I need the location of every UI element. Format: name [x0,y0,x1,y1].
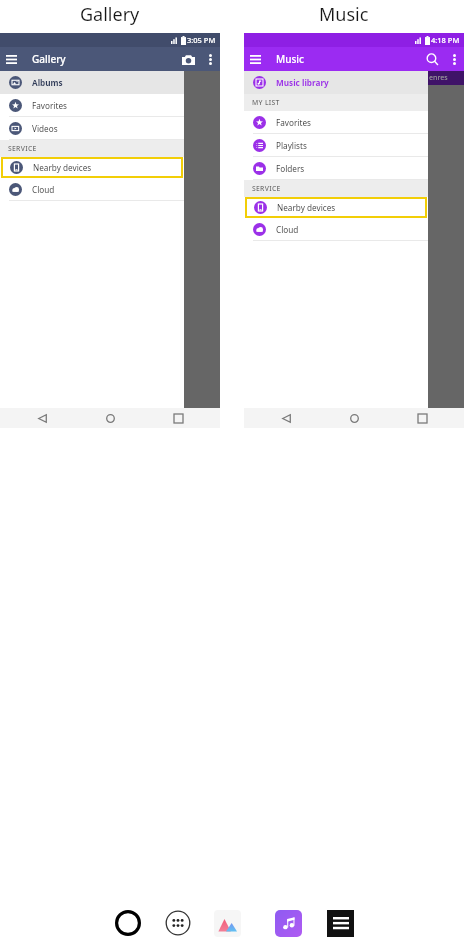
button[interactable]: Albums [0,71,184,94]
button[interactable]: Recents [168,408,188,428]
staticText: Favorites [32,100,67,111]
button[interactable]: Playlists [244,134,428,157]
button[interactable]: Gallery app [214,910,241,937]
button[interactable]: Videos [0,117,184,140]
staticText: Cloud [276,224,299,235]
staticText: Gallery [80,2,140,27]
staticText: 4:18 PM [431,35,460,45]
button[interactable]: Folders [244,157,428,180]
button[interactable]: Favorites [0,94,184,117]
staticText: SERVICE [8,144,37,153]
button[interactable]: Music library [244,71,428,94]
staticText: SERVICE [252,184,281,193]
staticText: Music library [276,77,329,88]
button[interactable]: Home [113,908,143,938]
button[interactable]: Menu [327,910,354,937]
button[interactable]: Apps [163,908,193,938]
staticText: MY LIST [252,98,280,107]
staticText: enres [429,73,448,83]
button[interactable]: Recents [412,408,432,428]
button[interactable]: Music app [275,910,302,937]
button[interactable]: Menu [0,48,22,70]
staticText: Folders [276,163,305,174]
button[interactable]: Home [100,408,120,428]
staticText: Favorites [276,117,311,128]
staticText: Nearby devices [33,162,92,173]
button[interactable]: Nearby devices [245,197,427,218]
button[interactable]: Back [276,408,296,428]
button[interactable]: More options [444,49,464,69]
staticText: Nearby devices [277,202,336,213]
staticText: Gallery [32,52,66,66]
staticText: 3:05 PM [187,35,216,45]
button[interactable]: Menu [244,48,266,70]
button[interactable]: Home [344,408,364,428]
staticText: Cloud [32,184,55,195]
button[interactable]: Camera [176,47,200,71]
staticText: Videos [32,123,58,134]
button[interactable]: Search [420,47,444,71]
staticText: Playlists [276,140,307,151]
button[interactable]: Favorites [244,111,428,134]
staticText: Music [276,52,304,66]
button[interactable]: Back [32,408,52,428]
button[interactable]: More options [200,49,220,69]
button[interactable]: Nearby devices [1,157,183,178]
staticText: Albums [32,77,63,88]
button[interactable]: Cloud [0,178,184,201]
staticText: Music [319,2,369,27]
button[interactable]: Cloud [244,218,428,241]
